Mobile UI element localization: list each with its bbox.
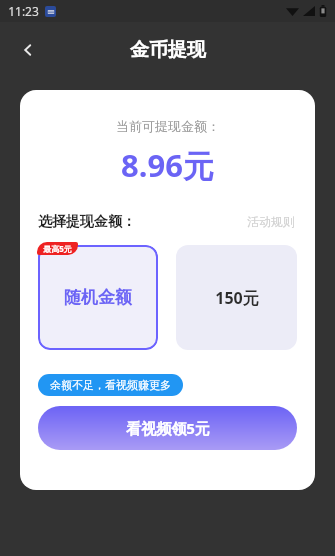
- button[interactable]: 余额不足，看视频赚更多: [38, 374, 183, 396]
- staticText: 金币提现: [130, 38, 206, 62]
- staticText: 11:23: [8, 3, 39, 19]
- button[interactable]: 随机金额: [38, 245, 158, 350]
- button[interactable]: Back: [8, 30, 48, 70]
- staticText: 150元: [215, 287, 259, 309]
- staticText: 余额不足，看视频赚更多: [50, 378, 171, 392]
- staticText: 8.96元: [121, 144, 214, 186]
- button[interactable]: 看视频领5元: [38, 406, 297, 450]
- button[interactable]: 活动规则: [245, 212, 297, 231]
- staticText: 活动规则: [247, 214, 295, 229]
- staticText: 选择提现金额：: [38, 213, 136, 231]
- staticText: 随机金额: [64, 287, 132, 308]
- staticText: 最高5元: [43, 243, 72, 254]
- staticText: 看视频领5元: [126, 418, 210, 438]
- staticText: 当前可提现金额：: [116, 118, 220, 134]
- button[interactable]: 150元: [176, 245, 297, 350]
